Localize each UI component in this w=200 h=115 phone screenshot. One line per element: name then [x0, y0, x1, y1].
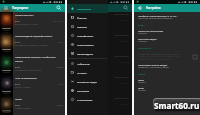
- staticText: Проверять обновления при старте: [138, 52, 180, 55]
- staticText: Игра на выживание: [15, 77, 37, 80]
- staticText: Шпионский мост: [15, 14, 34, 17]
- staticText: США: [58, 83, 63, 86]
- button[interactable]: Язык: [134, 85, 200, 93]
- button[interactable]: Настройки: [67, 86, 108, 95]
- button[interactable]: Происхождение Рудольфа Томаса: [0, 33, 65, 54]
- staticText: Логин для авторизации избранно..: [138, 17, 173, 20]
- staticText: Мультфильм, Семейный, Комедия: [15, 44, 48, 47]
- staticText: Настройки списка видео: [138, 63, 168, 66]
- staticText: Мультфильмы: [77, 34, 94, 37]
- staticText: 2013: [15, 41, 21, 44]
- staticText: Smart60.ru: [154, 100, 200, 111]
- button[interactable]: Случайное видео: [67, 77, 108, 86]
- staticText: Избранное: [77, 62, 90, 65]
- button[interactable]: О программе: [67, 95, 108, 104]
- button[interactable]: Тема: [134, 77, 200, 85]
- button[interactable]: Сериалы: [67, 22, 108, 31]
- staticText: Россия: [56, 104, 63, 107]
- staticText: ОБНОВЛЕНИЯ: [138, 47, 152, 50]
- staticText: Показать: [138, 40, 148, 43]
- button[interactable]: Мультфильмы: [67, 31, 108, 40]
- staticText: История: [77, 71, 87, 74]
- button[interactable]: Проверять обновления при старте: [134, 51, 200, 62]
- staticText: Драма, Триллер: [15, 86, 31, 89]
- button[interactable]: Приключения Мэрлока / Необычные Сказки: [0, 54, 65, 75]
- button[interactable]: Качество видео: [134, 36, 200, 44]
- button[interactable]: Телепередачи: [67, 49, 108, 58]
- staticText: США: [58, 41, 63, 44]
- staticText: Сериалы: [77, 25, 88, 28]
- staticText: О программе: [77, 98, 93, 101]
- staticText: ВИДЕО: [138, 24, 145, 27]
- staticText: 2015: [15, 83, 21, 86]
- staticText: Настройки: [146, 6, 161, 10]
- staticText: Мультсериалы: [77, 43, 94, 46]
- staticText: Тема: [138, 78, 144, 81]
- staticText: Качество видео: [138, 37, 157, 40]
- staticText: 2015: [15, 66, 21, 69]
- button[interactable]: Open navigation menu: [2, 4, 10, 12]
- staticText: Популярное: [12, 6, 29, 10]
- button[interactable]: Настройки списка видео: [134, 62, 200, 70]
- button[interactable]: История: [67, 68, 108, 77]
- staticText: США, 2015: [53, 20, 63, 23]
- button[interactable]: Search: [122, 4, 130, 12]
- staticText: Фильмы: [77, 16, 87, 19]
- staticText: Настройки: [77, 89, 90, 92]
- staticText: Популярное: [77, 7, 91, 10]
- staticText: Профиль пользователя TS TC Ос..: [138, 14, 178, 17]
- staticText: Язык: [138, 86, 144, 89]
- staticText: Россия: [56, 66, 63, 69]
- staticText: Телепередачи: [77, 52, 94, 55]
- staticText: Боевик, Драма, История: [15, 23, 38, 26]
- button[interactable]: Игра на выживание: [0, 75, 65, 96]
- button[interactable]: Шпионский мост: [0, 12, 65, 33]
- staticText: Случайное видео: [77, 80, 97, 83]
- staticText: 2013: [15, 104, 21, 107]
- button[interactable]: Профиль пользователя TS TC Ос..: [134, 13, 200, 21]
- staticText: 2015: [15, 20, 21, 23]
- button[interactable]: Избранное: [67, 59, 108, 68]
- button[interactable]: Back: [136, 4, 144, 12]
- button[interactable]: Фильмы: [67, 13, 108, 22]
- staticText: Мультфильм, Приключения: [15, 69, 42, 72]
- staticText: Плеер по умолчанию: [138, 29, 164, 32]
- button[interactable]: Популярное: [67, 4, 108, 13]
- staticText: ОБЩИЕ: [138, 73, 146, 76]
- staticText: Показать: [138, 32, 148, 35]
- staticText: Гараж: [15, 98, 22, 101]
- staticText: Проверить, сортировка, жанры: [138, 66, 170, 69]
- staticText: Русский: [138, 89, 146, 92]
- staticText: Приключения Мэрлока / Необычные Сказки: [15, 56, 63, 62]
- button[interactable]: Мультсериалы: [67, 40, 108, 49]
- staticText: Комедия, Драма: [15, 107, 31, 110]
- button[interactable]: Плеер по умолчанию: [134, 28, 200, 36]
- staticText: Темная: [138, 81, 146, 84]
- staticText: Происхождение Рудольфа Томаса: [15, 35, 53, 38]
- button[interactable]: Search: [55, 4, 63, 12]
- button[interactable]: Гараж: [0, 96, 65, 115]
- staticText: Проверять обновления программы и базы да…: [138, 55, 181, 61]
